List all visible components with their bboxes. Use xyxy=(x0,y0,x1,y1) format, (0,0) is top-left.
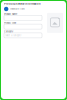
staticText: Product code xyxy=(4,22,16,24)
button[interactable] xyxy=(4,24,42,29)
button[interactable]: Add product image xyxy=(47,13,63,33)
staticText: Category xyxy=(4,30,13,33)
staticText: Inventory item xyxy=(10,8,25,10)
button[interactable] xyxy=(4,15,42,20)
staticText: Select a category xyxy=(5,34,21,37)
staticText: Product name xyxy=(4,13,17,15)
button[interactable]: Select a category xyxy=(4,33,42,38)
staticText: Product/Service Information xyxy=(4,2,41,5)
